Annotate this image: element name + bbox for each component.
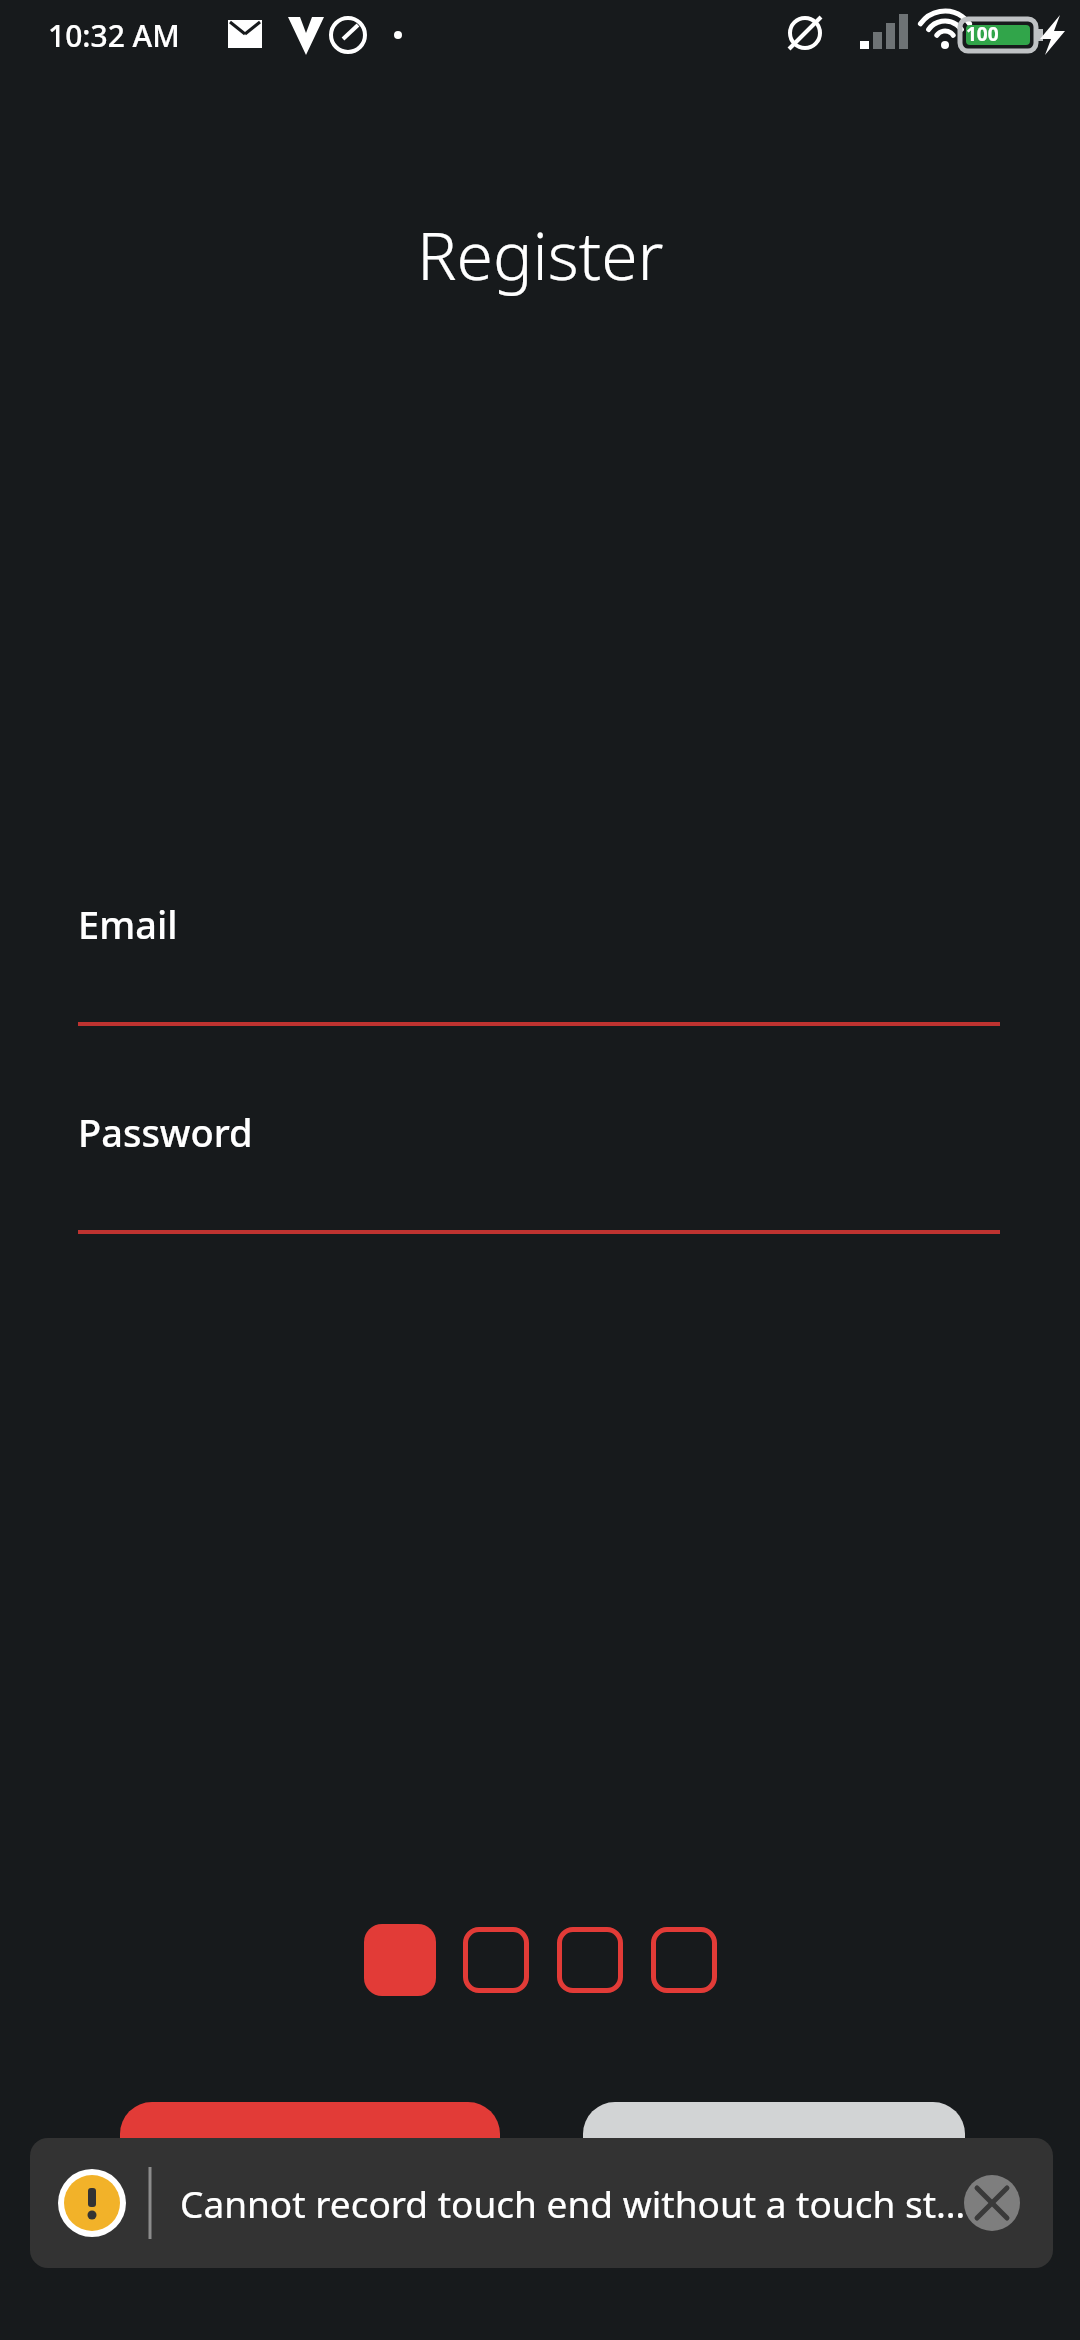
staticText: Password <box>78 1106 253 1158</box>
button[interactable]: Next <box>120 2102 500 2242</box>
staticText: Register <box>417 209 664 299</box>
staticText: Cannot record touch end without a touch … <box>180 2178 970 2228</box>
button[interactable]: Back <box>583 2102 965 2242</box>
button[interactable]: Step 2 <box>463 1927 529 1993</box>
button[interactable]: Step 4 <box>651 1927 717 1993</box>
button[interactable]: Step 3 <box>557 1927 623 1993</box>
staticText: 100 <box>966 21 999 47</box>
button[interactable]: Password <box>78 1106 1000 1234</box>
staticText: Email <box>78 898 178 950</box>
button[interactable]: Email <box>78 898 1000 1026</box>
button[interactable]: Dismiss <box>964 2175 1020 2231</box>
staticText: 10:32 AM <box>48 15 180 56</box>
button[interactable]: Step 1, current <box>364 1924 436 1996</box>
